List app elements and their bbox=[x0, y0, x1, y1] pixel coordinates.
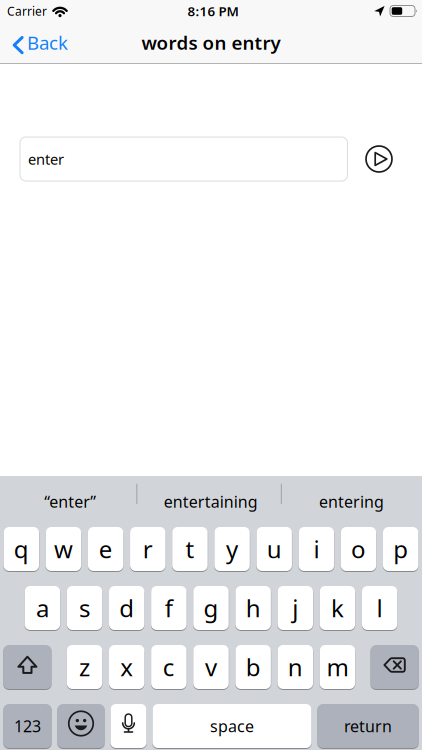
button[interactable]: space bbox=[152, 704, 311, 748]
button[interactable]: v bbox=[193, 645, 229, 689]
button[interactable]: o bbox=[341, 527, 376, 571]
staticText: Back bbox=[27, 30, 68, 55]
button[interactable]: h bbox=[235, 586, 271, 630]
staticText: enter bbox=[28, 149, 64, 169]
button[interactable]: a bbox=[25, 586, 60, 630]
button[interactable]: q bbox=[4, 527, 39, 571]
button[interactable] bbox=[366, 146, 392, 172]
staticText: space bbox=[210, 715, 254, 737]
staticText: j bbox=[292, 592, 298, 624]
staticText: a bbox=[36, 592, 49, 624]
staticText: t bbox=[185, 533, 194, 565]
button[interactable]: k bbox=[320, 586, 355, 630]
button[interactable]: t bbox=[172, 527, 208, 571]
button[interactable]: c bbox=[151, 645, 187, 689]
button[interactable]: r bbox=[130, 527, 165, 571]
button[interactable]: entertaining bbox=[140, 476, 281, 527]
button[interactable]: f bbox=[151, 586, 187, 630]
button[interactable]: “enter” bbox=[0, 476, 140, 527]
button[interactable] bbox=[110, 704, 146, 748]
staticText: “enter” bbox=[44, 491, 96, 512]
staticText: k bbox=[331, 592, 344, 624]
button[interactable]: n bbox=[278, 645, 313, 689]
staticText: n bbox=[288, 651, 303, 683]
staticText: l bbox=[377, 592, 383, 624]
button[interactable] bbox=[3, 645, 51, 689]
button[interactable]: s bbox=[67, 586, 102, 630]
staticText: r bbox=[143, 533, 153, 565]
button[interactable] bbox=[57, 704, 104, 748]
button[interactable]: z bbox=[67, 645, 102, 689]
button[interactable]: i bbox=[299, 527, 334, 571]
button[interactable]: Back bbox=[0, 30, 68, 55]
staticText: Carrier bbox=[7, 3, 47, 19]
staticText: b bbox=[246, 651, 261, 683]
staticText: c bbox=[163, 651, 175, 683]
staticText: m bbox=[326, 651, 348, 683]
staticText: w bbox=[54, 533, 73, 565]
staticText: y bbox=[226, 533, 238, 565]
staticText: u bbox=[267, 533, 282, 565]
staticText: entering bbox=[319, 491, 384, 512]
button[interactable]: enter bbox=[20, 137, 347, 181]
staticText: g bbox=[203, 592, 218, 624]
button[interactable]: d bbox=[109, 586, 144, 630]
staticText: h bbox=[246, 592, 261, 624]
staticText: x bbox=[120, 651, 133, 683]
button[interactable]: u bbox=[256, 527, 292, 571]
staticText: entertaining bbox=[164, 491, 258, 512]
button[interactable]: w bbox=[46, 527, 81, 571]
staticText: d bbox=[119, 592, 134, 624]
staticText: q bbox=[14, 533, 29, 565]
button[interactable]: l bbox=[362, 586, 397, 630]
staticText: s bbox=[79, 592, 90, 624]
button[interactable]: entering bbox=[281, 476, 422, 527]
button[interactable]: e bbox=[88, 527, 123, 571]
staticText: i bbox=[313, 533, 319, 565]
button[interactable] bbox=[371, 645, 419, 689]
staticText: 8:16 PM bbox=[187, 2, 238, 20]
staticText: f bbox=[165, 592, 173, 624]
button[interactable]: g bbox=[193, 586, 229, 630]
staticText: z bbox=[79, 651, 90, 683]
button[interactable]: 123 bbox=[3, 704, 51, 748]
button[interactable]: j bbox=[278, 586, 313, 630]
button[interactable]: y bbox=[214, 527, 250, 571]
button[interactable]: x bbox=[109, 645, 144, 689]
button[interactable]: m bbox=[320, 645, 355, 689]
staticText: e bbox=[99, 533, 113, 565]
staticText: return bbox=[344, 715, 392, 737]
staticText: o bbox=[351, 533, 366, 565]
staticText: 123 bbox=[14, 715, 41, 737]
button[interactable]: p bbox=[383, 527, 418, 571]
button[interactable]: return bbox=[317, 704, 418, 748]
staticText: words on entry bbox=[141, 30, 280, 55]
staticText: v bbox=[205, 651, 217, 683]
staticText: p bbox=[393, 533, 408, 565]
button[interactable]: b bbox=[235, 645, 271, 689]
